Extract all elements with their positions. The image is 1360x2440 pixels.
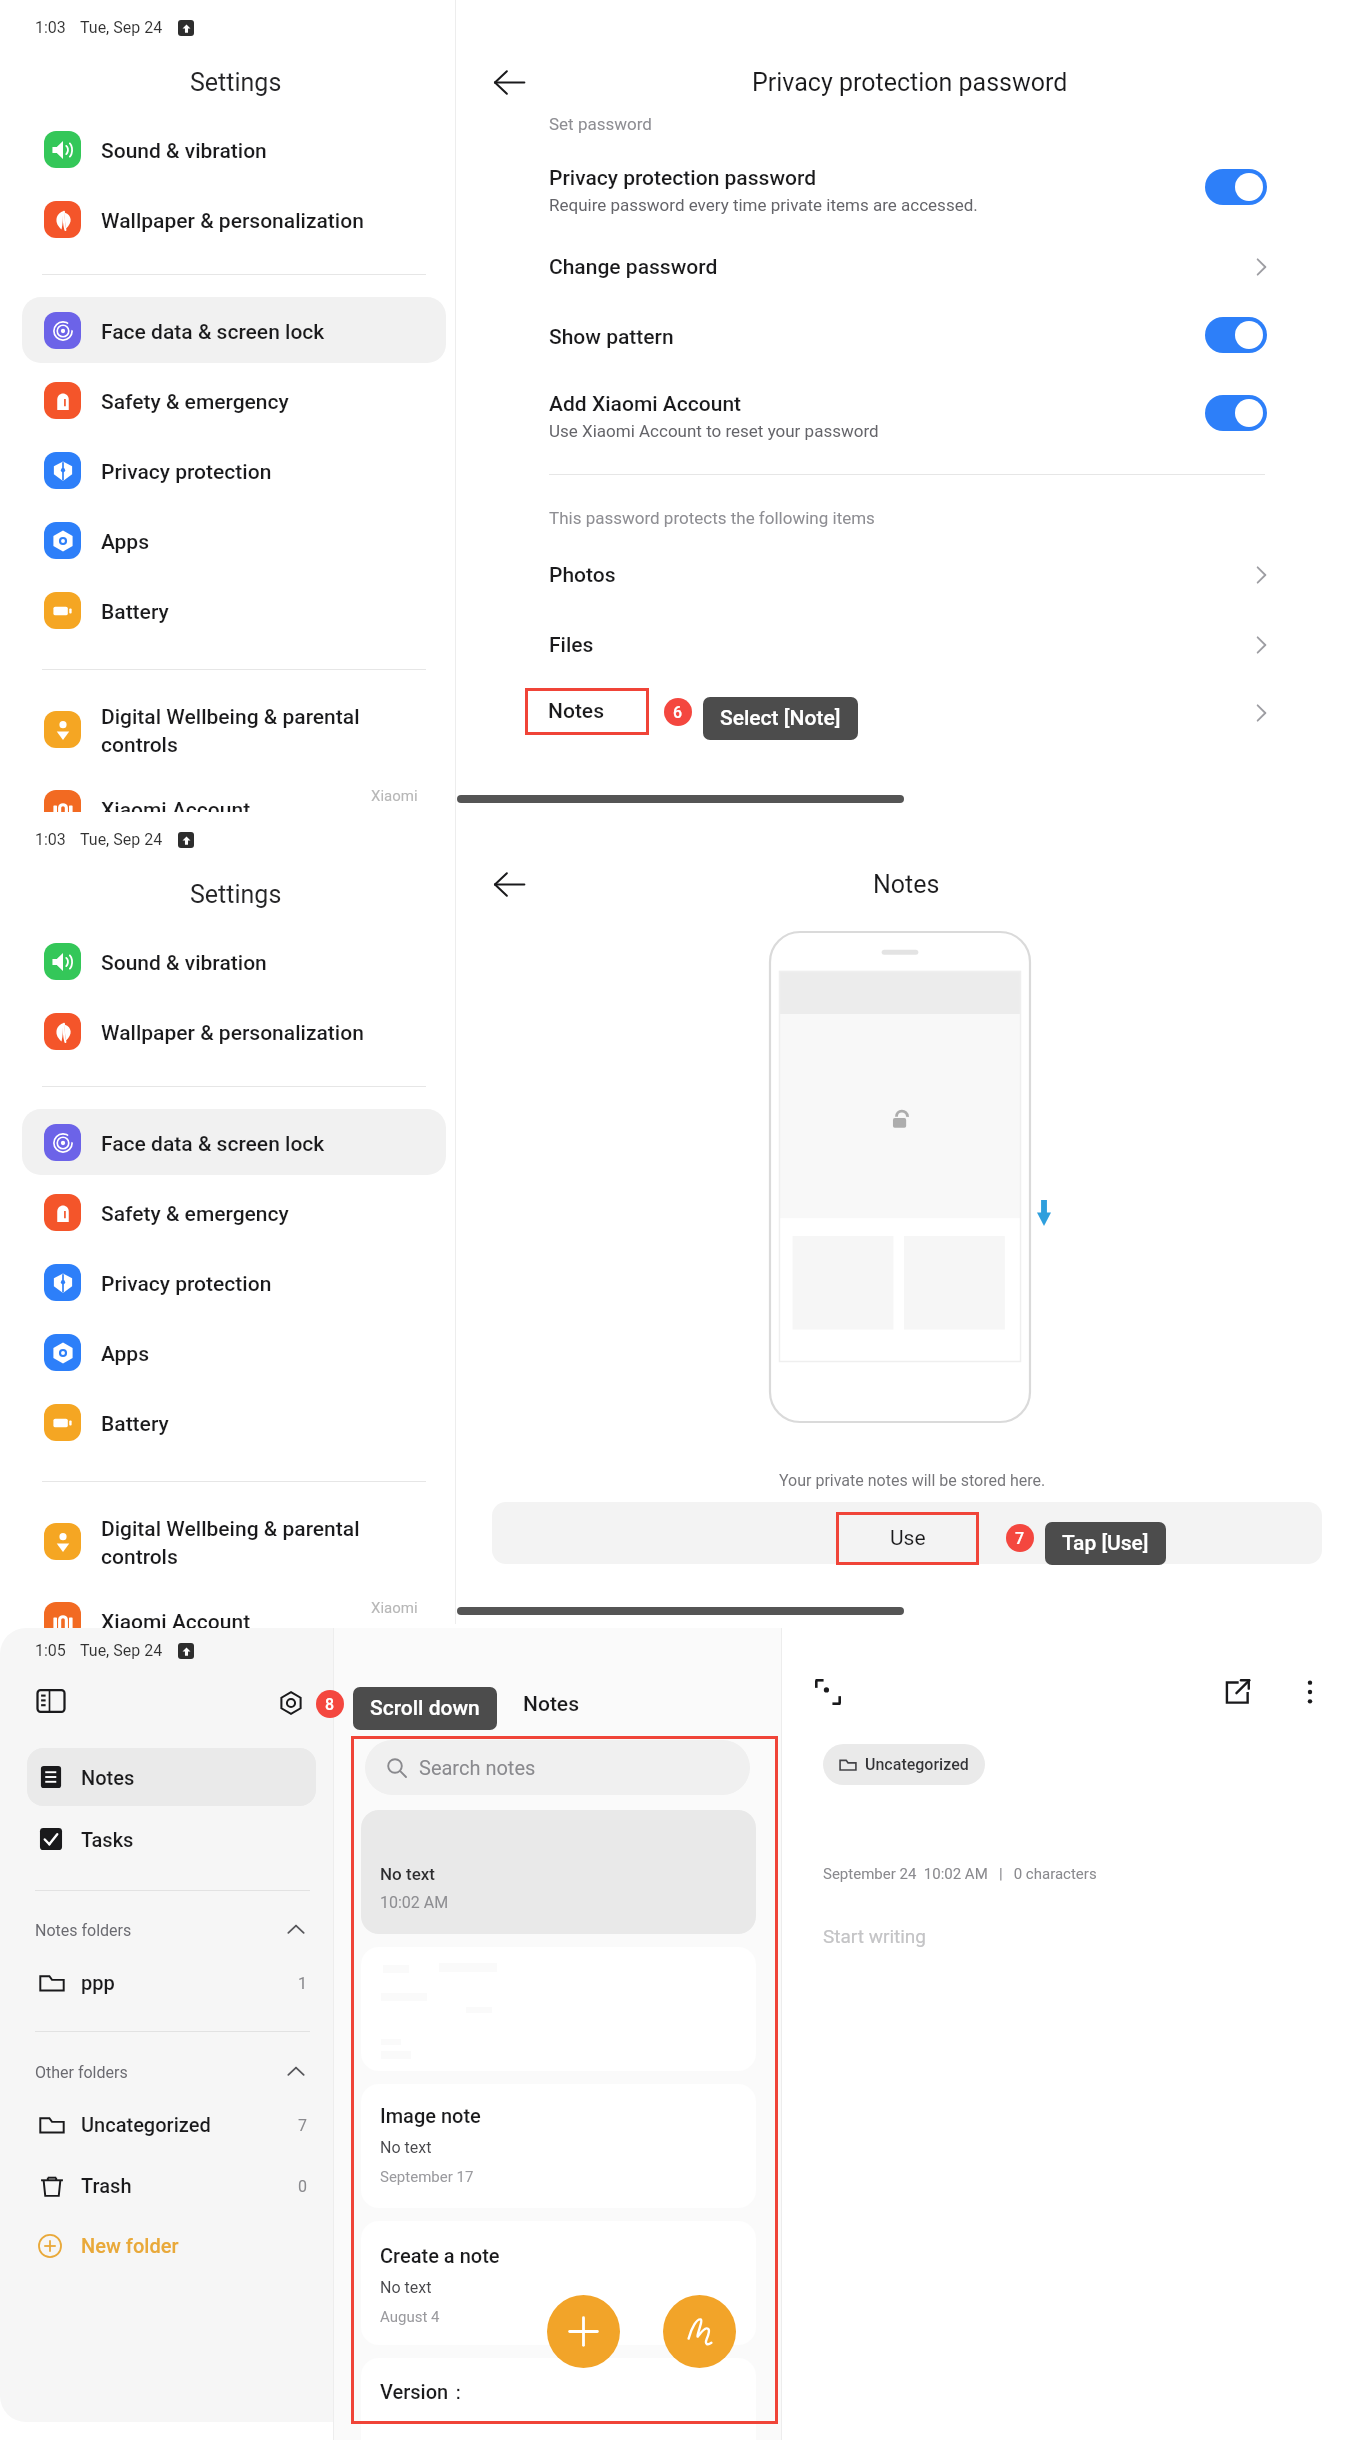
button[interactable]	[549, 240, 1360, 296]
button[interactable]: Digital Wellbeing & parental controls	[22, 1508, 446, 1574]
button[interactable]: Battery	[22, 577, 446, 643]
staticText: Notes	[873, 870, 940, 899]
staticText: Settings	[190, 68, 282, 97]
staticText: No text	[380, 2138, 432, 2157]
button[interactable]: Image note	[361, 2084, 756, 2208]
staticText: Safety & emergency	[101, 390, 289, 415]
button[interactable]: Use	[836, 1512, 979, 1565]
button[interactable]: Safety & emergency	[22, 1179, 446, 1245]
staticText: No text	[380, 2278, 432, 2297]
button[interactable]: No text	[361, 1810, 756, 1934]
staticText: Apps	[101, 530, 149, 555]
staticText: Search notes	[419, 1756, 536, 1779]
staticText: 1	[298, 1974, 307, 1993]
staticText: Notes	[548, 699, 604, 724]
button[interactable]: Wallpaper & personalization	[22, 186, 446, 252]
button[interactable]: Battery	[22, 1389, 446, 1455]
staticText: ppp	[81, 1971, 115, 1994]
staticText: Tue, Sep 24	[80, 18, 163, 37]
staticText: 1:03	[35, 18, 66, 37]
staticText: Set password	[549, 114, 652, 134]
button[interactable]: Toggle	[1205, 395, 1267, 431]
button[interactable]	[549, 618, 1360, 674]
button[interactable]: Notes	[525, 688, 649, 735]
staticText: Uncategorized	[81, 2113, 211, 2136]
button[interactable]: Xiaomi Account	[22, 775, 446, 841]
button[interactable]	[27, 1811, 316, 1869]
button[interactable]: Digital Wellbeing & parental controls	[22, 696, 446, 762]
staticText: Your private notes will be stored here.	[779, 1471, 1046, 1490]
staticText: Tue, Sep 24	[80, 1641, 163, 1660]
staticText: Apps	[101, 1342, 149, 1367]
button[interactable]	[549, 310, 1360, 366]
button[interactable]	[27, 2098, 316, 2152]
staticText: Sound & vibration	[101, 139, 267, 164]
staticText: New folder	[81, 2234, 179, 2257]
button[interactable]: Select notes	[806, 1670, 850, 1714]
button[interactable]: Back	[483, 56, 535, 108]
button[interactable]: Handwriting note	[663, 2295, 736, 2368]
button[interactable]: Face data & screen lock	[22, 1109, 446, 1175]
button[interactable]: Search notes	[365, 1740, 750, 1795]
staticText: Xiaomi	[371, 1599, 418, 1617]
staticText: Tap [Use]	[1062, 1531, 1149, 1556]
button[interactable]	[27, 1956, 316, 2010]
staticText: Settings	[190, 880, 282, 909]
staticText: Select [Note]	[720, 706, 841, 731]
button[interactable]	[27, 2052, 316, 2094]
button[interactable]: Xiaomi Account	[22, 1587, 446, 1653]
button[interactable]: Uncategorized	[823, 1744, 985, 1785]
button[interactable]: Settings	[271, 1683, 311, 1723]
staticText: Image note	[380, 2104, 481, 2127]
staticText: Privacy protection	[101, 1272, 272, 1297]
button[interactable]: Apps	[22, 507, 446, 573]
staticText: Change password	[549, 255, 718, 280]
button[interactable]: Toggle sidebar	[28, 1678, 74, 1724]
staticText: Privacy protection password	[549, 166, 817, 191]
button[interactable]	[27, 2222, 316, 2276]
staticText: Files	[549, 633, 594, 658]
button[interactable]: More options	[1288, 1670, 1332, 1714]
staticText: August 4	[380, 2308, 440, 2326]
button[interactable]	[549, 155, 1360, 220]
button[interactable]: Safety & emergency	[22, 367, 446, 433]
button[interactable]	[27, 2159, 316, 2213]
staticText: Other folders	[35, 2063, 128, 2082]
button[interactable]: Privacy protection	[22, 437, 446, 503]
staticText: Notes	[523, 1692, 579, 1717]
button[interactable]	[549, 688, 1360, 744]
button[interactable]: Version：	[361, 2358, 756, 2440]
button[interactable]: Apps	[22, 1319, 446, 1385]
button[interactable]: Sound & vibration	[22, 928, 446, 994]
button[interactable]: Share	[1215, 1670, 1259, 1714]
staticText: 7	[1015, 1529, 1025, 1548]
staticText: Xiaomi	[371, 787, 418, 805]
button[interactable]	[549, 380, 1360, 445]
staticText: Face data & screen lock	[101, 1132, 325, 1157]
button[interactable]	[492, 1502, 1322, 1564]
button[interactable]: New note	[547, 2295, 620, 2368]
staticText: September 17	[380, 2168, 474, 2186]
button[interactable]: Create a note	[361, 2221, 756, 2345]
button[interactable]: Wallpaper & personalization	[22, 998, 446, 1064]
staticText: Xiaomi Account	[101, 798, 251, 823]
staticText: September 24 10:02 AM | 0 characters	[823, 1865, 1097, 1883]
staticText: Digital Wellbeing & parental controls	[101, 1517, 360, 1569]
button[interactable]: Face data & screen lock	[22, 297, 446, 363]
staticText: 10:02 AM	[380, 1893, 449, 1912]
staticText: Privacy protection password	[752, 68, 1068, 97]
button[interactable]: Privacy protection	[22, 1249, 446, 1315]
staticText: Trash	[81, 2174, 132, 2197]
button[interactable]	[27, 1748, 316, 1806]
button[interactable]	[27, 1910, 316, 1952]
staticText: Digital Wellbeing & parental controls	[101, 705, 360, 757]
staticText: Notes	[81, 1766, 135, 1789]
staticText: Use	[890, 1526, 926, 1551]
button[interactable]: Back	[483, 858, 535, 910]
button[interactable]: Sound & vibration	[22, 116, 446, 182]
button[interactable]: Toggle	[1205, 317, 1267, 353]
button[interactable]: Toggle	[1205, 169, 1267, 205]
button[interactable]	[549, 548, 1360, 604]
staticText: Wallpaper & personalization	[101, 1021, 364, 1046]
